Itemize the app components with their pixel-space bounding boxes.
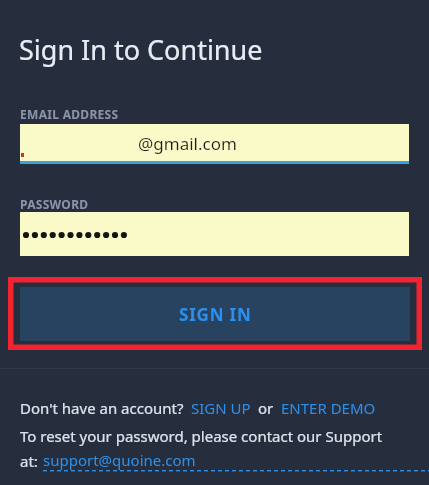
staticText: Sign In to Continue xyxy=(19,31,263,68)
staticText: support@quoine.com xyxy=(43,450,196,470)
staticText: or xyxy=(258,398,274,418)
staticText: PASSWORD xyxy=(20,196,89,212)
staticText: at: xyxy=(20,451,38,471)
button[interactable] xyxy=(20,212,409,256)
staticText: SIGN UP xyxy=(191,398,251,418)
staticText: To reset your password, please contact o… xyxy=(20,426,383,446)
staticText: Don't have an account? xyxy=(20,398,184,418)
staticText: EMAIL ADDRESS xyxy=(20,106,119,122)
button[interactable]: SIGN UP xyxy=(191,398,251,418)
staticText: @gmail.com xyxy=(138,132,237,155)
button[interactable]: @gmail.com xyxy=(20,124,409,164)
staticText: SIGN IN xyxy=(179,303,252,326)
button[interactable]: support@quoine.com xyxy=(43,450,429,472)
button[interactable]: ENTER DEMO xyxy=(281,398,376,418)
button[interactable]: SIGN IN xyxy=(20,287,410,341)
staticText: ENTER DEMO xyxy=(281,398,376,418)
